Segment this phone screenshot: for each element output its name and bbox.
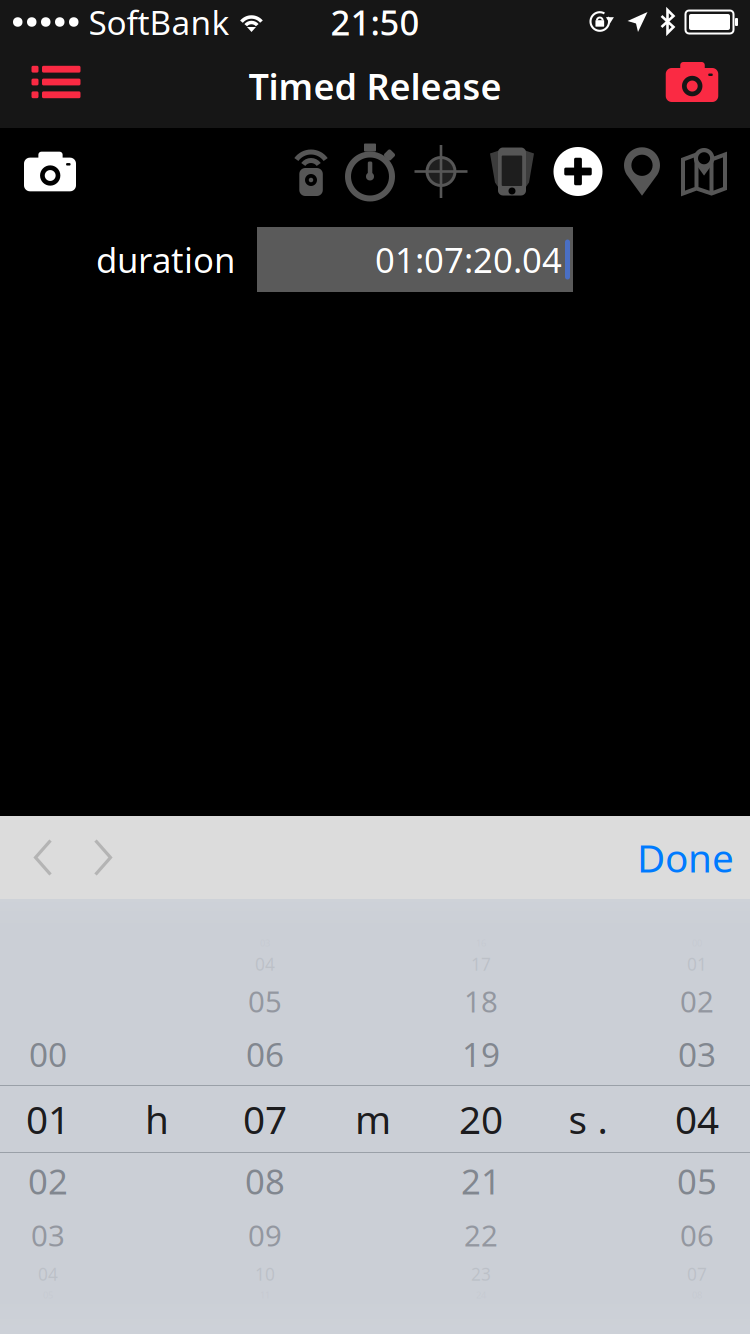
staticText: 10 bbox=[255, 1262, 275, 1285]
button[interactable]: Map bbox=[672, 128, 736, 215]
staticText: SoftBank bbox=[88, 0, 229, 44]
staticText: 01:07:20.04 bbox=[375, 236, 562, 282]
staticText: 03 bbox=[31, 1215, 65, 1254]
staticText: m bbox=[355, 1093, 391, 1145]
staticText: 01 bbox=[26, 1093, 70, 1145]
button[interactable]: Location bbox=[610, 128, 674, 215]
staticText: 17 bbox=[471, 952, 491, 975]
staticText: Done bbox=[637, 832, 734, 883]
staticText: 08 bbox=[245, 1158, 285, 1204]
staticText: 06 bbox=[680, 1215, 714, 1254]
staticText: 07 bbox=[243, 1093, 287, 1145]
button[interactable]: Capture bbox=[18, 128, 82, 215]
staticText: 21 bbox=[461, 1158, 501, 1204]
staticText: Timed Release bbox=[248, 62, 501, 110]
staticText: 03 bbox=[678, 1032, 716, 1076]
staticText: duration bbox=[96, 236, 235, 282]
staticText: 05 bbox=[248, 981, 282, 1020]
button[interactable]: Previous field bbox=[12, 816, 74, 899]
button[interactable]: Add bbox=[546, 128, 610, 215]
button[interactable]: Menu bbox=[18, 40, 94, 124]
staticText: 09 bbox=[248, 1215, 282, 1254]
button[interactable]: Timer bbox=[338, 128, 402, 215]
staticText: 01 bbox=[687, 952, 707, 975]
staticText: 06 bbox=[246, 1032, 284, 1076]
staticText: 18 bbox=[464, 981, 498, 1020]
staticText: 21:50 bbox=[330, 0, 419, 45]
staticText: 04 bbox=[675, 1093, 719, 1145]
staticText: 07 bbox=[687, 1262, 707, 1285]
staticText: 04 bbox=[38, 1262, 58, 1285]
staticText: 00 bbox=[29, 1032, 67, 1076]
staticText: 20 bbox=[459, 1093, 503, 1145]
staticText: 23 bbox=[471, 1262, 491, 1285]
staticText: h bbox=[145, 1093, 169, 1145]
button[interactable]: Camera bbox=[649, 40, 735, 124]
staticText: 04 bbox=[255, 952, 275, 975]
staticText: 02 bbox=[680, 981, 714, 1020]
staticText: 05 bbox=[677, 1158, 717, 1204]
staticText: 02 bbox=[28, 1158, 68, 1204]
staticText: s . bbox=[568, 1093, 607, 1145]
staticText: 22 bbox=[464, 1215, 498, 1254]
staticText: 19 bbox=[462, 1032, 500, 1076]
button[interactable]: Next field bbox=[72, 816, 134, 899]
button[interactable]: Remote bbox=[279, 128, 343, 215]
button[interactable]: Focus bbox=[409, 128, 473, 215]
button[interactable]: Shake bbox=[480, 128, 544, 215]
button[interactable]: Done bbox=[621, 816, 750, 899]
